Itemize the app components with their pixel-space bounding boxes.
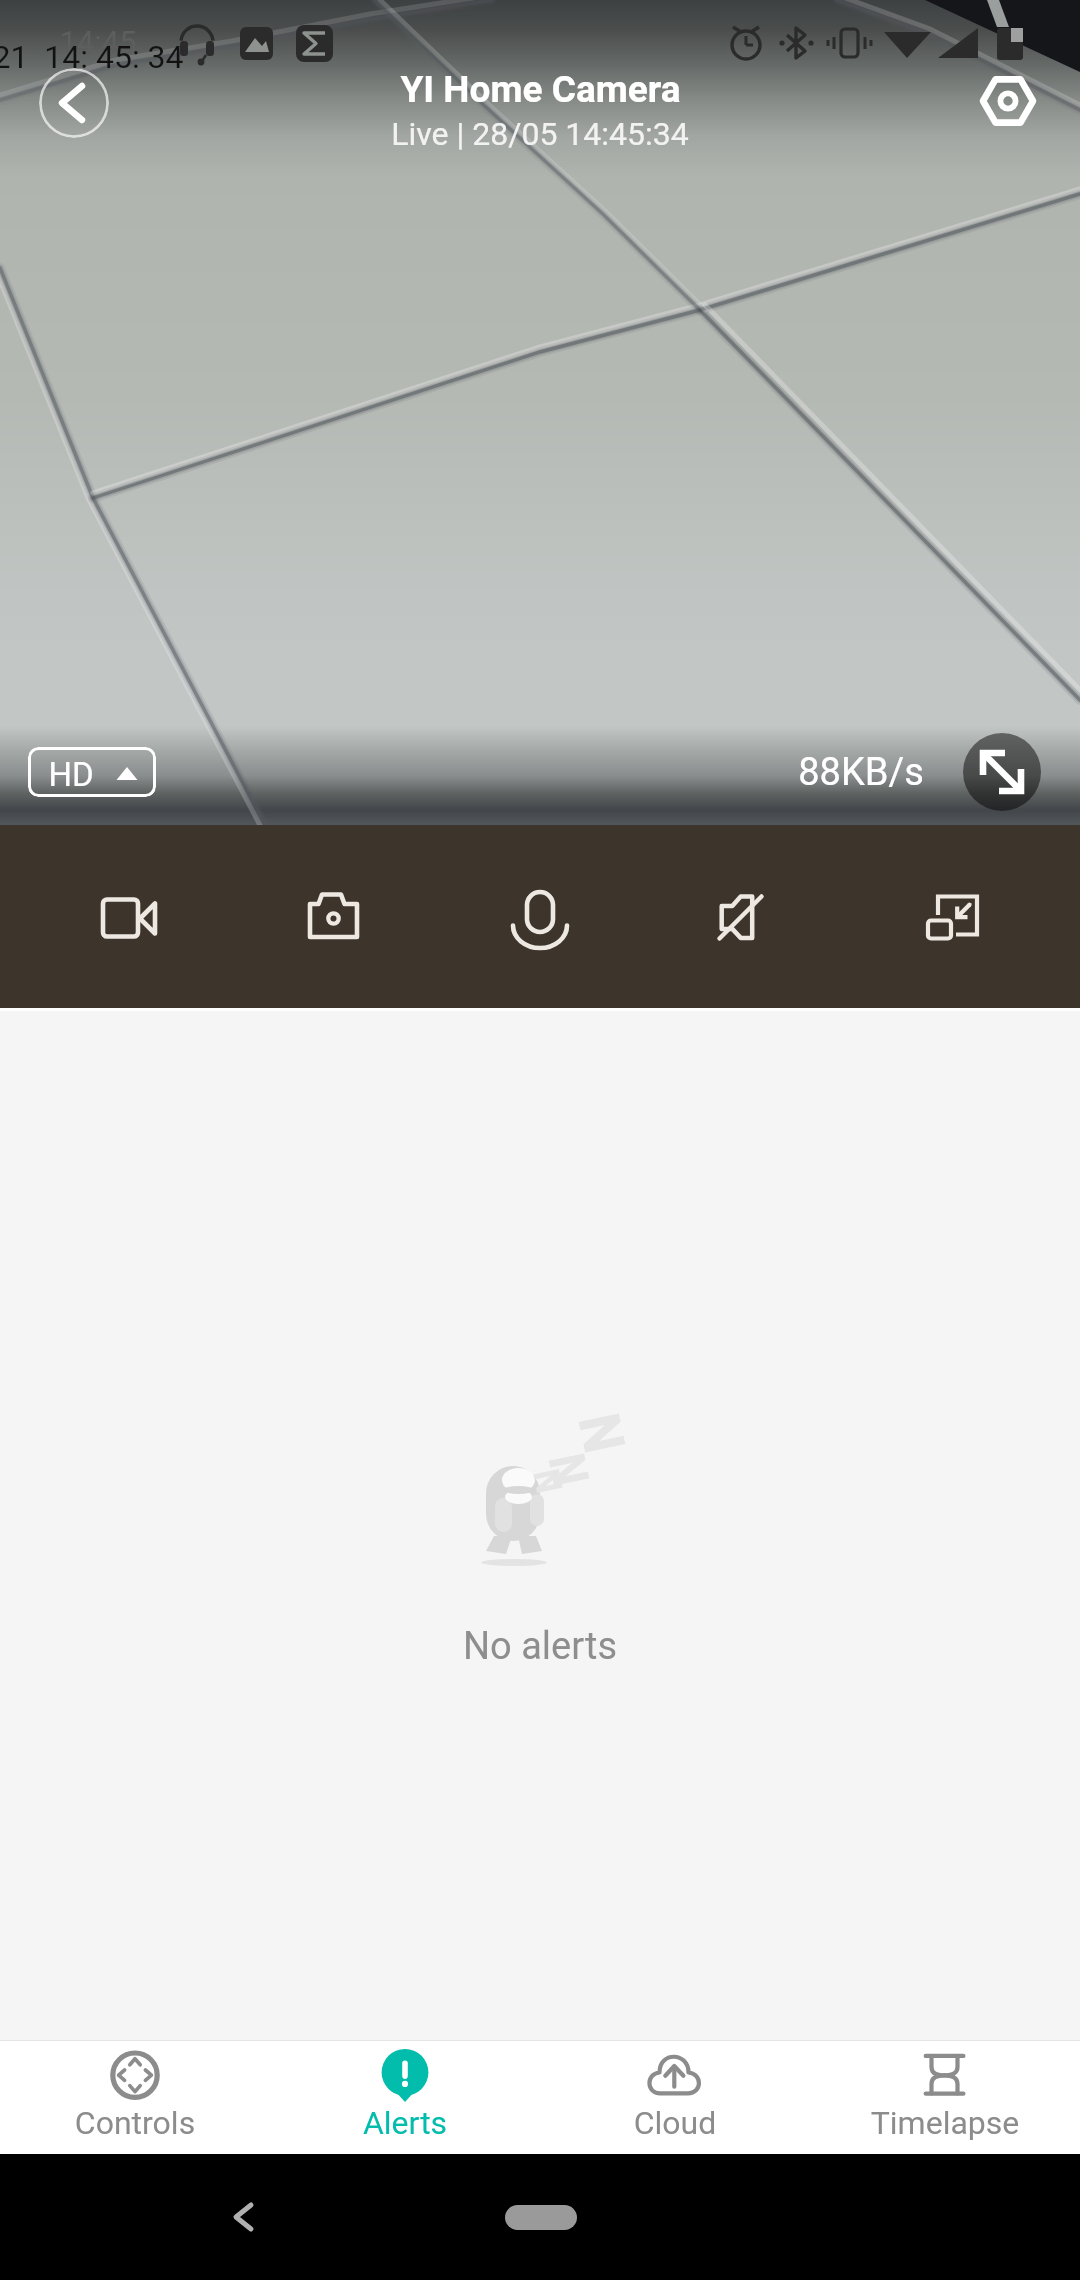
- staticText: 88KB/s: [798, 750, 924, 795]
- staticText: Timelapse: [810, 2104, 1080, 2142]
- button[interactable]: Timelapse: [810, 2041, 1080, 2154]
- staticText: 14:45: [59, 24, 137, 60]
- button[interactable]: Controls: [0, 2041, 270, 2154]
- staticText: 21 14: 45: 34: [0, 38, 184, 76]
- staticText: Cloud: [540, 2104, 810, 2142]
- button[interactable]: Take photo: [284, 862, 384, 972]
- staticText: Controls: [0, 2104, 270, 2142]
- button[interactable]: Back: [198, 2172, 288, 2262]
- button[interactable]: Cloud: [540, 2041, 810, 2154]
- staticText: Alerts: [270, 2104, 540, 2142]
- button[interactable]: Talk: [490, 862, 590, 972]
- button[interactable]: Record video: [78, 862, 178, 972]
- button[interactable]: Full screen: [963, 733, 1041, 811]
- button[interactable]: Back: [39, 68, 109, 138]
- staticText: Live | 28/05 14:45:34: [391, 115, 689, 153]
- button[interactable]: HD: [28, 747, 156, 797]
- staticText: No alerts: [0, 1624, 1080, 1669]
- button[interactable]: Settings: [972, 66, 1044, 138]
- button[interactable]: Alerts: [270, 2041, 540, 2154]
- button[interactable]: Home: [480, 2184, 600, 2250]
- staticText: YI Home Camera: [400, 68, 681, 111]
- button[interactable]: Picture in picture: [902, 862, 1002, 972]
- button[interactable]: Mute: [696, 862, 796, 972]
- staticText: HD: [48, 755, 94, 794]
